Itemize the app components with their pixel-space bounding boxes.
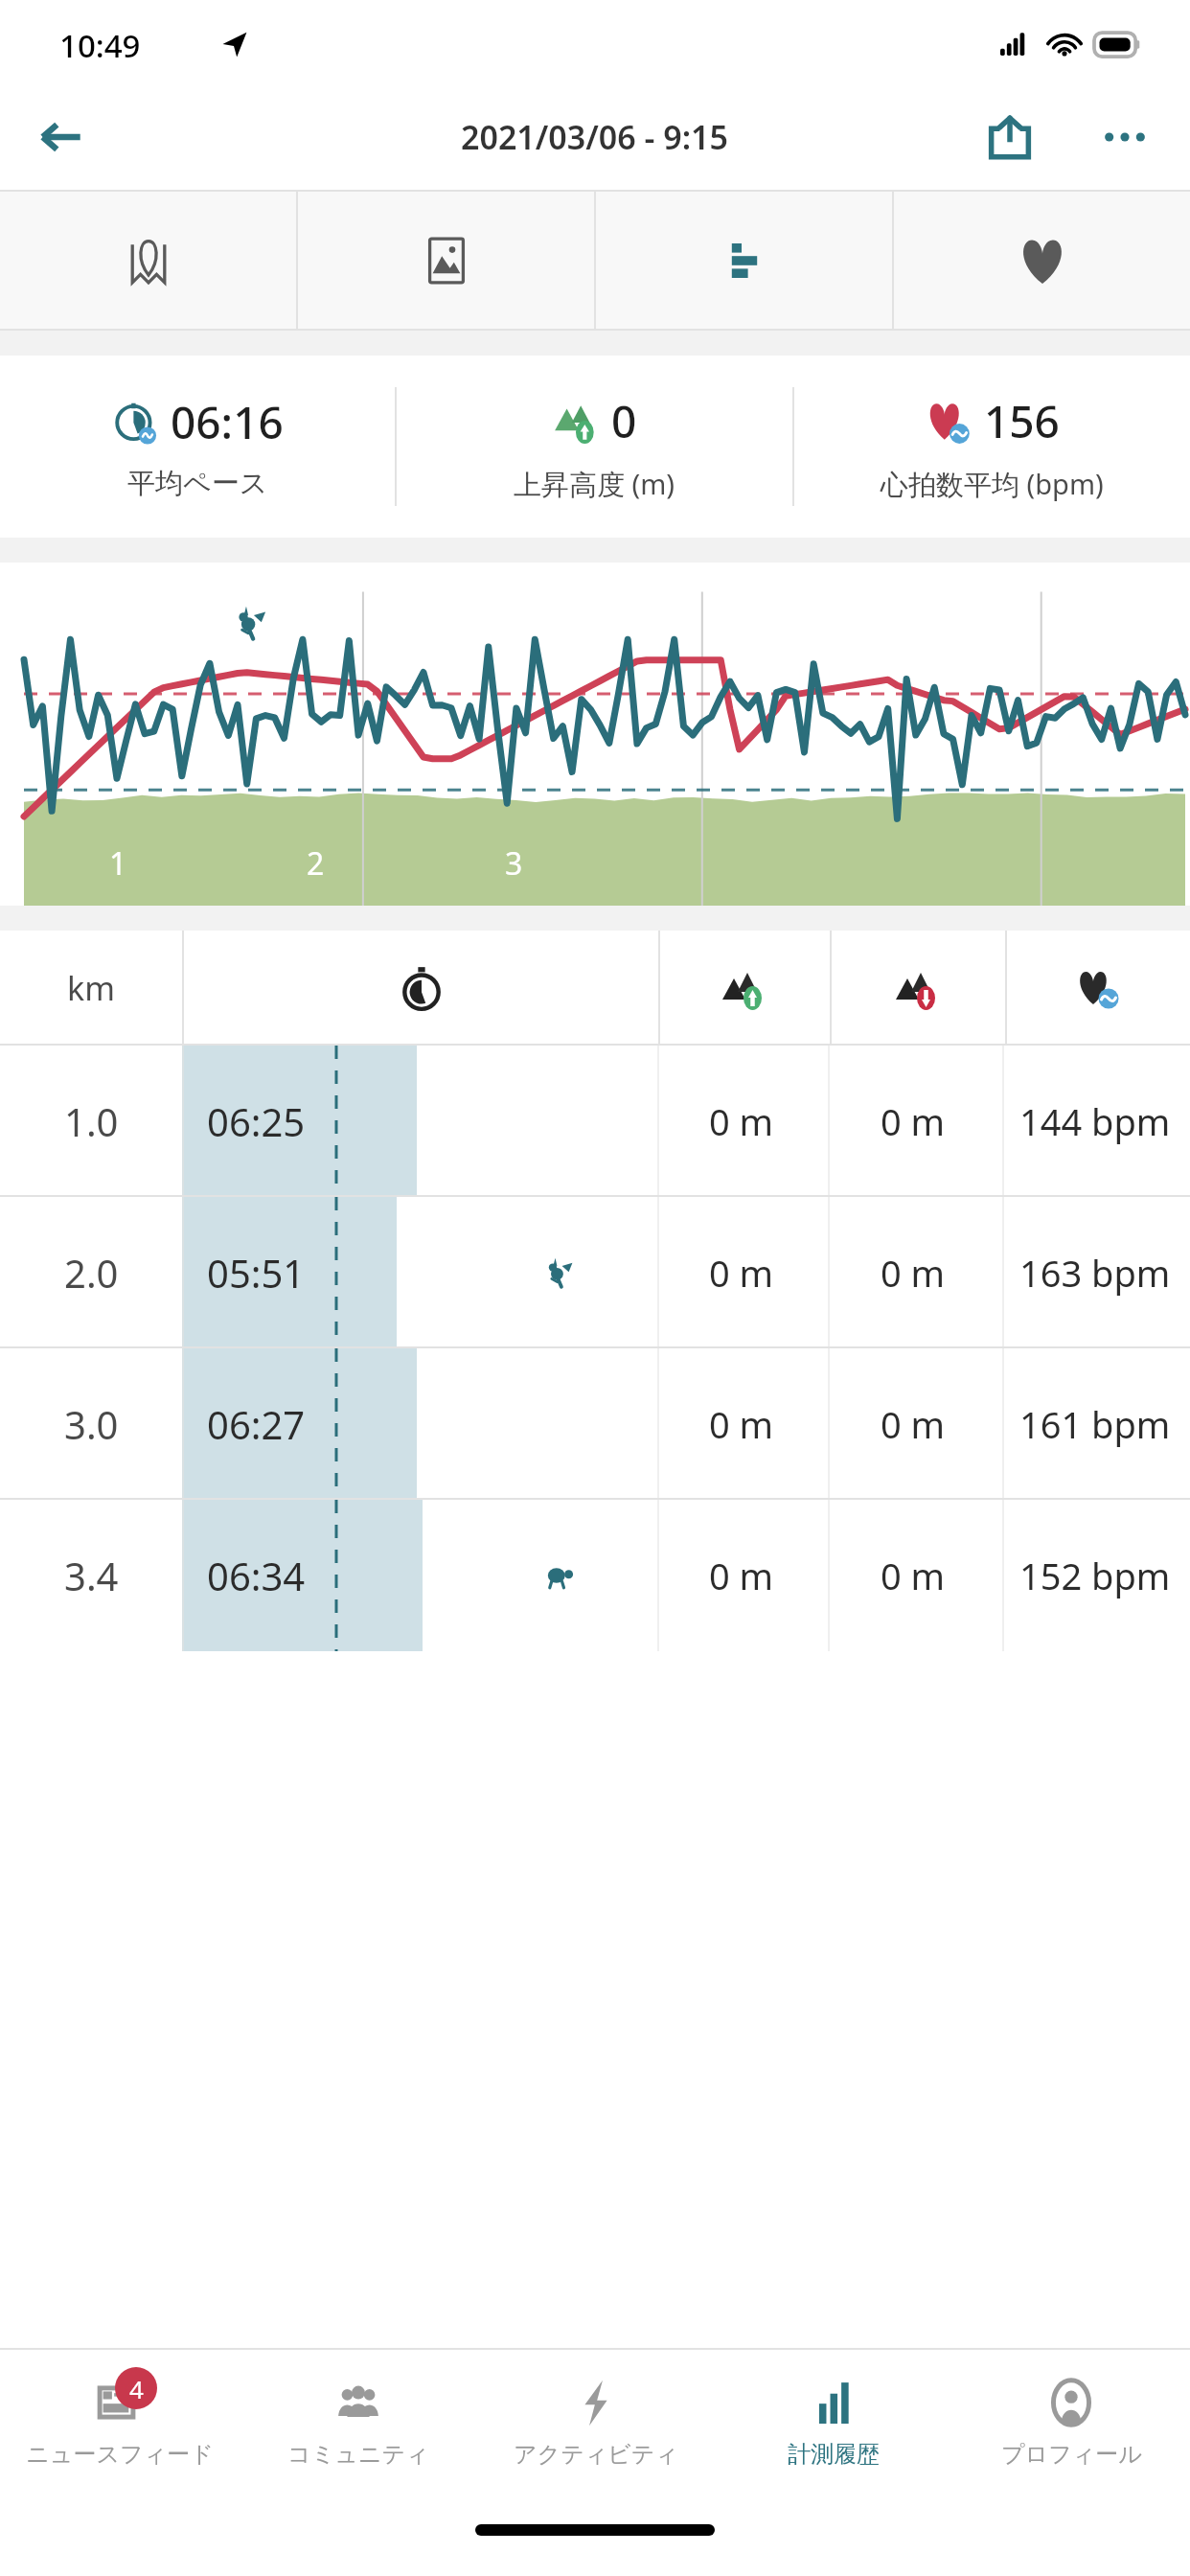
- staticText: 144 bpm: [1019, 1096, 1171, 1146]
- staticText: コミュニティ: [287, 2440, 429, 2469]
- staticText: 3: [505, 842, 523, 885]
- staticText: 平均ペース: [127, 466, 268, 501]
- button[interactable]: Photos: [298, 192, 594, 329]
- staticText: プロフィール: [1001, 2440, 1142, 2469]
- staticText: 計測履歴: [788, 2440, 880, 2469]
- button[interactable]: 4: [0, 2350, 239, 2511]
- staticText: 3.4: [64, 1550, 119, 1601]
- staticText: 0 m: [709, 1096, 774, 1146]
- staticText: 0 m: [709, 1399, 774, 1449]
- button[interactable]: 156: [794, 356, 1190, 538]
- staticText: km: [67, 966, 115, 1010]
- button[interactable]: Charts: [596, 192, 892, 329]
- staticText: 2: [307, 842, 325, 885]
- button[interactable]: 3.0: [0, 1348, 1190, 1500]
- button[interactable]: Heart rate: [894, 192, 1190, 329]
- staticText: 心拍数平均 (bpm): [881, 465, 1104, 503]
- button[interactable]: 0: [397, 356, 792, 538]
- button[interactable]: 3.4: [0, 1500, 1190, 1651]
- staticText: アクティビティ: [514, 2440, 678, 2469]
- staticText: 上昇高度 (m): [514, 465, 675, 503]
- staticText: 152 bpm: [1019, 1551, 1171, 1600]
- staticText: 1: [109, 842, 127, 885]
- staticText: 161 bpm: [1019, 1399, 1171, 1449]
- staticText: 06:16: [171, 392, 284, 452]
- button[interactable]: 06:16: [0, 356, 395, 538]
- staticText: 2021/03/06 - 9:15: [461, 115, 729, 159]
- button[interactable]: 計測履歴: [715, 2350, 952, 2511]
- staticText: 0: [611, 391, 637, 451]
- staticText: 05:51: [207, 1247, 306, 1299]
- staticText: 0 m: [881, 1096, 946, 1146]
- staticText: 0 m: [709, 1551, 774, 1600]
- staticText: 2.0: [64, 1247, 119, 1299]
- staticText: 4: [129, 2372, 144, 2405]
- button[interactable]: Share: [970, 97, 1050, 177]
- button[interactable]: [0, 563, 1190, 906]
- button[interactable]: Map: [0, 192, 296, 329]
- staticText: 06:25: [207, 1095, 306, 1147]
- staticText: 156: [984, 391, 1060, 451]
- staticText: 3.0: [64, 1398, 119, 1450]
- button[interactable]: コミュニティ: [239, 2350, 477, 2511]
- staticText: 0 m: [709, 1248, 774, 1298]
- staticText: 06:34: [207, 1550, 306, 1601]
- staticText: 163 bpm: [1019, 1248, 1171, 1298]
- staticText: 1.0: [64, 1095, 119, 1147]
- staticText: 10:49: [59, 24, 141, 67]
- staticText: ニュースフィード: [26, 2440, 214, 2469]
- staticText: 0 m: [881, 1399, 946, 1449]
- button[interactable]: 2.0: [0, 1197, 1190, 1348]
- staticText: 06:27: [207, 1398, 306, 1450]
- button[interactable]: プロフィール: [952, 2350, 1190, 2511]
- staticText: 0 m: [881, 1551, 946, 1600]
- button[interactable]: Back: [21, 98, 100, 176]
- button[interactable]: アクティビティ: [477, 2350, 715, 2511]
- button[interactable]: 1.0: [0, 1046, 1190, 1197]
- staticText: 0 m: [881, 1248, 946, 1298]
- button[interactable]: More options: [1085, 97, 1165, 177]
